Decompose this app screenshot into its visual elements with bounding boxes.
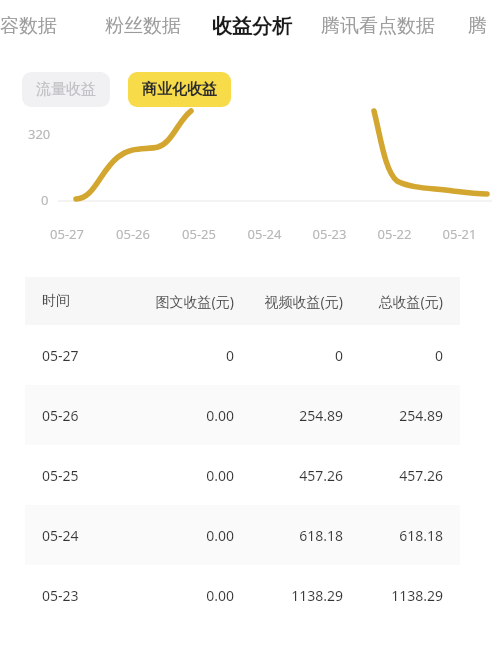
button[interactable]: 05-23 <box>25 565 460 625</box>
staticText: 05-27 <box>34 225 100 243</box>
staticText: 0 <box>41 191 49 209</box>
staticText: 0 <box>125 346 234 365</box>
button[interactable]: 商业化收益 <box>128 72 231 107</box>
staticText: 05-26 <box>42 406 125 425</box>
staticText: 视频收益(元) <box>234 292 343 311</box>
staticText: 图文收益(元) <box>125 292 234 311</box>
staticText: 05-23 <box>297 225 362 243</box>
staticText: 收益分析 <box>212 14 292 39</box>
button[interactable]: 收益分析 <box>202 0 302 52</box>
button[interactable]: 05-24 <box>25 505 460 565</box>
staticText: 商业化收益 <box>142 80 217 99</box>
staticText: 0.00 <box>125 406 234 425</box>
staticText: 05-23 <box>42 586 125 605</box>
staticText: 05-22 <box>362 225 427 243</box>
staticText: 618.18 <box>234 526 343 545</box>
staticText: 总收益(元) <box>343 292 443 311</box>
staticText: 1138.29 <box>234 586 343 605</box>
staticText: 05-25 <box>42 466 125 485</box>
staticText: 流量收益 <box>36 80 96 99</box>
staticText: 05-27 <box>42 346 125 365</box>
staticText: 254.89 <box>234 406 343 425</box>
staticText: 时间 <box>42 292 125 310</box>
staticText: 0.00 <box>125 586 234 605</box>
button[interactable]: 流量收益 <box>22 72 110 107</box>
button[interactable]: 腾讯看点数据 <box>302 0 454 52</box>
staticText: 1138.29 <box>343 586 443 605</box>
staticText: 254.89 <box>343 406 443 425</box>
button[interactable]: 05-27 <box>25 325 460 385</box>
button[interactable]: 容数据 <box>0 0 84 52</box>
staticText: 0.00 <box>125 466 234 485</box>
staticText: 0.00 <box>125 526 234 545</box>
staticText: 腾 <box>468 14 487 38</box>
staticText: 457.26 <box>234 466 343 485</box>
button[interactable]: 05-25 <box>25 445 460 505</box>
button[interactable]: 05-26 <box>25 385 460 445</box>
staticText: 容数据 <box>0 14 57 38</box>
staticText: 05-24 <box>42 526 125 545</box>
staticText: 05-21 <box>427 225 492 243</box>
button[interactable]: 粉丝数据 <box>84 0 202 52</box>
staticText: 05-26 <box>100 225 166 243</box>
staticText: 粉丝数据 <box>105 14 181 38</box>
staticText: 618.18 <box>343 526 443 545</box>
staticText: 0 <box>234 346 343 365</box>
button[interactable]: 腾 <box>454 0 500 52</box>
staticText: 320 <box>28 125 51 143</box>
staticText: 腾讯看点数据 <box>321 14 435 38</box>
staticText: 0 <box>343 346 443 365</box>
staticText: 05-25 <box>166 225 232 243</box>
staticText: 457.26 <box>343 466 443 485</box>
staticText: 05-24 <box>232 225 297 243</box>
